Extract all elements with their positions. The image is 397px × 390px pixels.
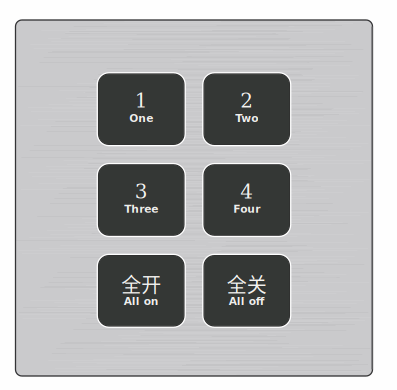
- staticText: Three: [124, 203, 158, 215]
- staticText: One: [129, 112, 153, 124]
- staticText: 4: [240, 180, 253, 203]
- staticText: 1: [135, 89, 148, 112]
- staticText: 全开: [121, 269, 161, 298]
- button[interactable]: 3: [97, 163, 185, 236]
- button[interactable]: 1: [97, 73, 185, 146]
- staticText: 3: [135, 180, 148, 203]
- staticText: 全关: [227, 269, 267, 298]
- button[interactable]: 全开: [97, 254, 185, 327]
- staticText: All off: [229, 295, 265, 307]
- button[interactable]: 4: [203, 163, 291, 236]
- button[interactable]: 全关: [203, 254, 291, 327]
- button[interactable]: 2: [203, 73, 291, 146]
- staticText: 2: [240, 89, 253, 112]
- staticText: Four: [233, 203, 260, 215]
- staticText: Two: [235, 112, 258, 124]
- staticText: All on: [124, 295, 159, 307]
